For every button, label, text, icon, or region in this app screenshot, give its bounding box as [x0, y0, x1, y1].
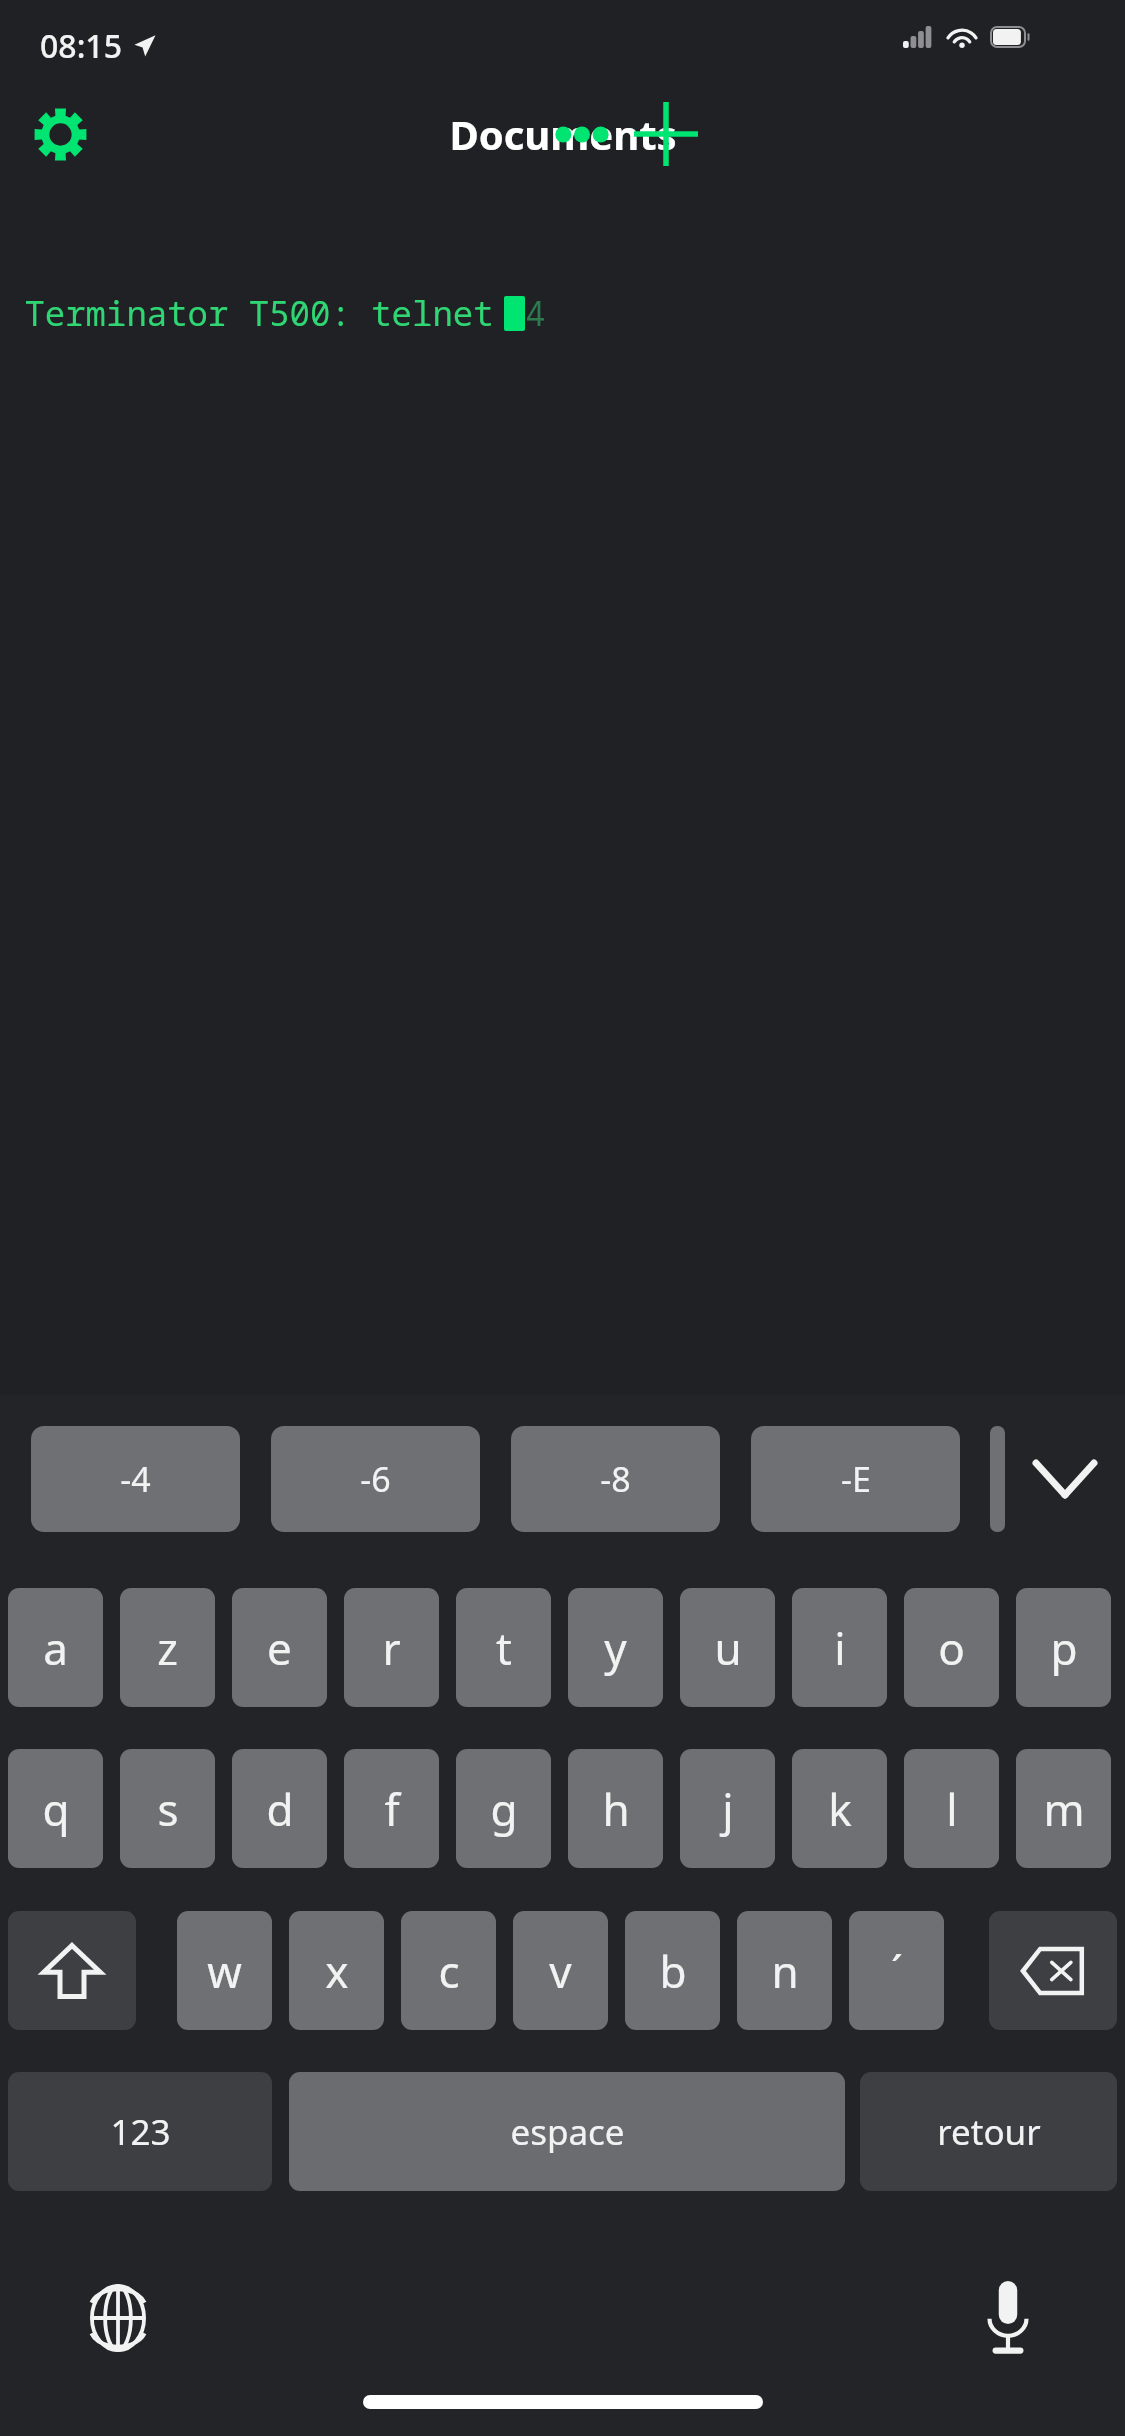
button[interactable]: q	[8, 1749, 103, 1868]
staticText: h	[602, 1779, 630, 1839]
button[interactable]: r	[344, 1588, 439, 1707]
button[interactable]: e	[232, 1588, 327, 1707]
button[interactable]: y	[568, 1588, 663, 1707]
button[interactable]: i	[792, 1588, 887, 1707]
button[interactable]: n	[737, 1911, 832, 2030]
button[interactable]: Settings	[19, 93, 101, 175]
button[interactable]: -E	[751, 1426, 960, 1532]
staticText: k	[828, 1779, 852, 1839]
button[interactable]: h	[568, 1749, 663, 1868]
button[interactable]: z	[120, 1588, 215, 1707]
staticText: -8	[600, 1456, 631, 1502]
staticText: e	[267, 1618, 292, 1678]
button[interactable]: More options	[538, 93, 626, 175]
staticText: Terminator T500: telnet	[14, 290, 504, 336]
staticText: 123	[110, 2108, 171, 2156]
staticText: b	[659, 1941, 687, 2001]
button[interactable]: Shift	[8, 1911, 136, 2030]
button[interactable]: d	[232, 1749, 327, 1868]
staticText: j	[722, 1779, 734, 1839]
staticText: x	[325, 1941, 349, 2001]
button[interactable]: Add	[622, 90, 710, 178]
staticText: g	[490, 1779, 518, 1839]
button[interactable]: -4	[31, 1426, 240, 1532]
staticText: v	[549, 1941, 572, 2001]
button[interactable]: 123	[8, 2072, 272, 2191]
button[interactable]: f	[344, 1749, 439, 1868]
staticText: -E	[841, 1456, 871, 1502]
button[interactable]: s	[120, 1749, 215, 1868]
staticText: r	[382, 1618, 401, 1678]
staticText: s	[157, 1779, 179, 1839]
staticText: i	[834, 1618, 846, 1678]
button[interactable]: m	[1016, 1749, 1111, 1868]
button[interactable]: ´	[849, 1911, 944, 2030]
staticText: m	[1043, 1779, 1085, 1839]
staticText: y	[604, 1618, 627, 1678]
staticText: z	[157, 1618, 178, 1678]
button[interactable]: t	[456, 1588, 551, 1707]
button[interactable]: v	[513, 1911, 608, 2030]
staticText: w	[207, 1941, 242, 2001]
button[interactable]: o	[904, 1588, 999, 1707]
staticText: f	[384, 1779, 400, 1839]
staticText: d	[266, 1779, 294, 1839]
button[interactable]: -6	[271, 1426, 480, 1532]
staticText: Documents	[449, 107, 677, 161]
button[interactable]: u	[680, 1588, 775, 1707]
staticText: retour	[937, 2108, 1041, 2156]
button[interactable]: retour	[860, 2072, 1117, 2191]
button[interactable]: espace	[289, 2072, 845, 2191]
button[interactable]: Hide keyboard	[1020, 1434, 1110, 1524]
staticText: -6	[360, 1456, 391, 1502]
button[interactable]: b	[625, 1911, 720, 2030]
button[interactable]: a	[8, 1588, 103, 1707]
button[interactable]: Backspace	[989, 1911, 1117, 2030]
button[interactable]: c	[401, 1911, 496, 2030]
staticText: t	[496, 1618, 512, 1678]
staticText: q	[42, 1779, 70, 1839]
button[interactable]: -8	[511, 1426, 720, 1532]
staticText: u	[714, 1618, 742, 1678]
staticText: -4	[120, 1456, 151, 1502]
button[interactable]: l	[904, 1749, 999, 1868]
staticText: n	[771, 1941, 799, 2001]
staticText: 08:15	[40, 24, 122, 68]
button[interactable]: x	[289, 1911, 384, 2030]
button[interactable]: k	[792, 1749, 887, 1868]
staticText: espace	[510, 2108, 625, 2156]
button[interactable]: p	[1016, 1588, 1111, 1707]
button[interactable]: j	[680, 1749, 775, 1868]
staticText: 4	[525, 290, 546, 336]
button[interactable]: g	[456, 1749, 551, 1868]
button[interactable]: w	[177, 1911, 272, 2030]
staticText: ´	[891, 1942, 903, 1999]
staticText: o	[938, 1618, 965, 1678]
staticText: c	[438, 1941, 460, 2001]
staticText: p	[1050, 1618, 1078, 1678]
staticText: l	[946, 1779, 958, 1839]
staticText: a	[43, 1618, 68, 1678]
button[interactable]: Next keyboard	[75, 2275, 161, 2361]
button[interactable]: Dictate	[965, 2275, 1051, 2361]
